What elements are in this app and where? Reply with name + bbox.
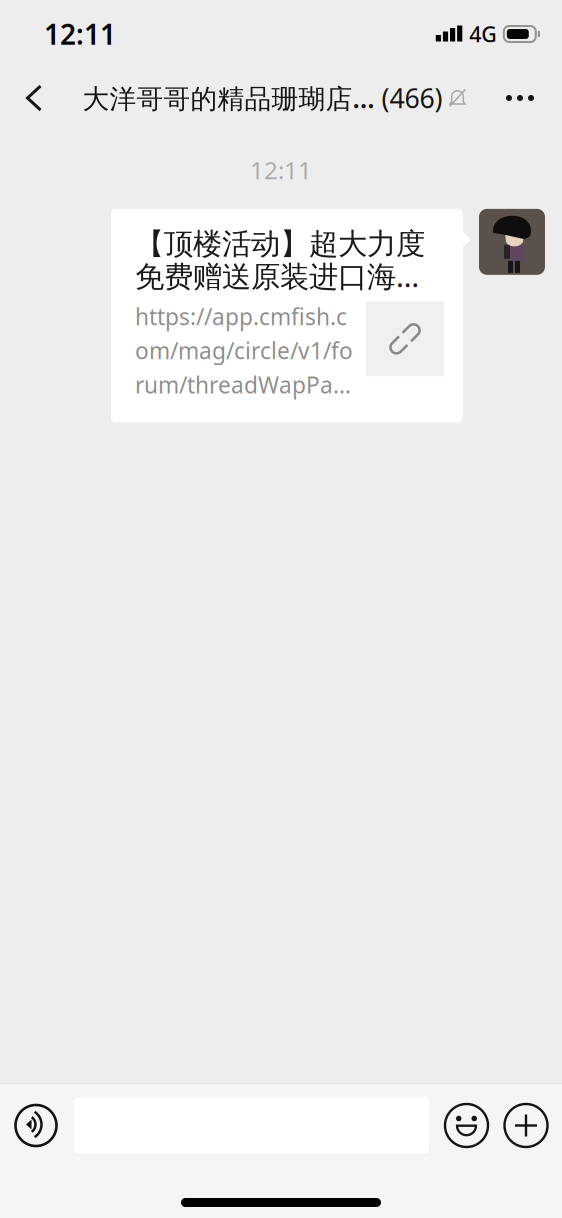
button[interactable]: Hold to talk [14,1103,58,1147]
staticText: https://app.cmfish.c om/mag/circle/v1/fo… [135,301,353,400]
staticText: 【顶楼活动】超大力度 免费赠送原装进口海… [135,226,425,295]
button[interactable]: More [504,1103,548,1147]
staticText: (466) [374,80,442,116]
button[interactable]: Back [3,68,65,128]
button[interactable]: 【顶楼活动】超大力度 免费赠送原装进口海… [111,209,463,423]
staticText: 4G [469,20,497,48]
button[interactable]: Profile photo [471,209,545,275]
staticText: 12:11 [44,15,116,53]
staticText: 12:11 [250,154,312,186]
staticText: 大洋哥哥的精品珊瑚店… [82,80,374,116]
button[interactable]: More [489,68,551,128]
button[interactable]: Emoji [444,1103,488,1147]
